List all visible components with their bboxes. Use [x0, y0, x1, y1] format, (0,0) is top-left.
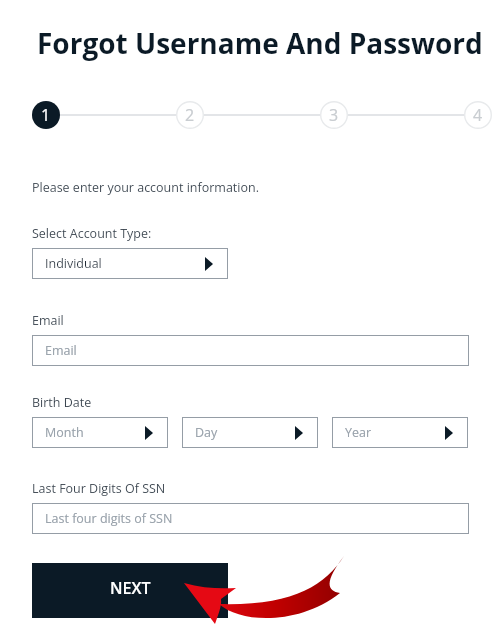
- staticText: 3: [329, 104, 339, 126]
- button[interactable]: Day: [182, 417, 318, 448]
- button[interactable]: Step 2: [176, 101, 204, 129]
- staticText: Select Account Type:: [32, 225, 152, 242]
- staticText: Email: [32, 312, 64, 329]
- button[interactable]: Year: [332, 417, 468, 448]
- button[interactable]: Month: [32, 417, 168, 448]
- staticText: 1: [41, 104, 51, 126]
- staticText: Please enter your account information.: [32, 179, 259, 196]
- staticText: Month: [45, 424, 84, 441]
- button[interactable]: Step 1: [32, 101, 60, 129]
- button[interactable]: Email: [32, 335, 469, 366]
- button[interactable]: Step 3: [320, 101, 348, 129]
- staticText: Forgot Username And Password: [37, 24, 483, 62]
- staticText: 4: [473, 104, 483, 126]
- staticText: Year: [345, 424, 372, 441]
- staticText: Last four digits of SSN: [45, 510, 173, 527]
- staticText: Individual: [45, 255, 102, 272]
- button[interactable]: Individual: [32, 248, 228, 279]
- staticText: Day: [195, 424, 218, 441]
- staticText: Email: [45, 342, 77, 359]
- button[interactable]: NEXT: [32, 563, 228, 618]
- staticText: Last Four Digits Of SSN: [32, 480, 166, 497]
- staticText: NEXT: [110, 577, 151, 599]
- staticText: 2: [185, 104, 195, 126]
- staticText: Birth Date: [32, 394, 92, 411]
- button[interactable]: Step 4: [464, 101, 492, 129]
- button[interactable]: Last four digits of SSN: [32, 503, 469, 534]
